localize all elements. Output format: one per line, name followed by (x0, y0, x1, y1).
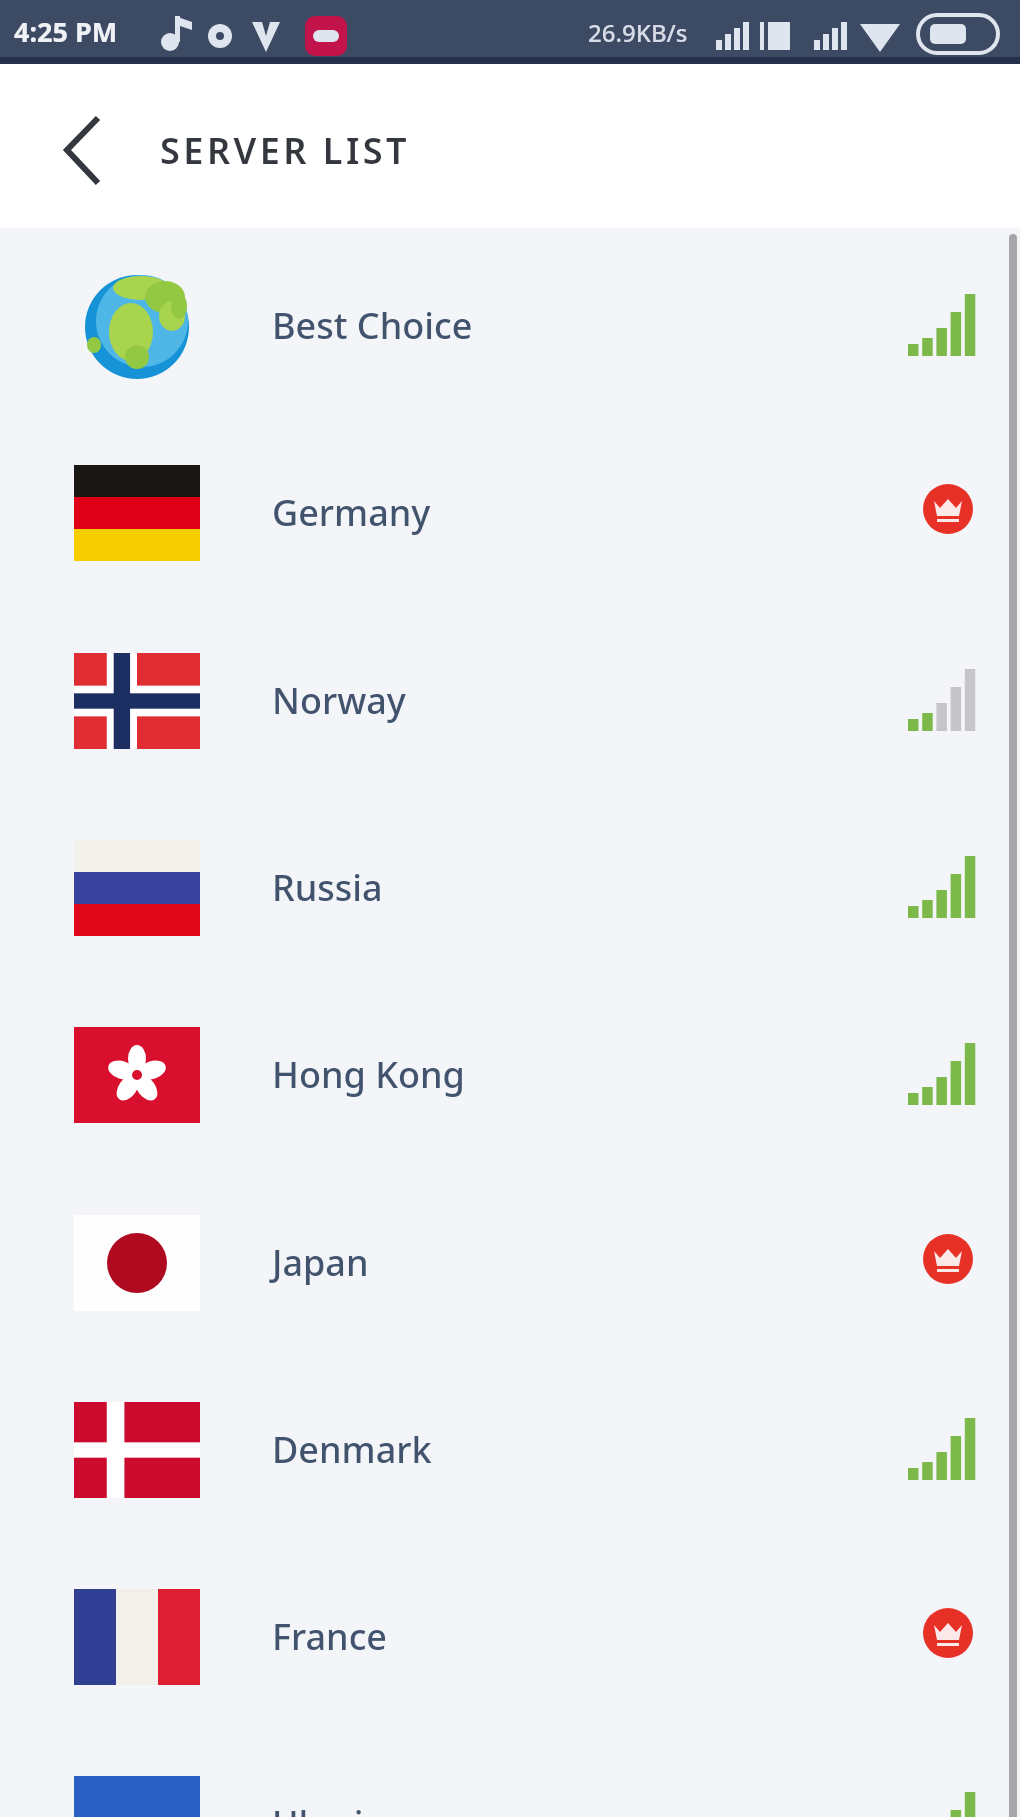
staticText: Russia (272, 863, 907, 912)
staticText: Best Choice (272, 301, 907, 350)
button[interactable] (44, 100, 124, 200)
staticText: SERVER LIST (160, 126, 411, 175)
staticText: Denmark (272, 1425, 907, 1474)
button[interactable]: France (0, 1543, 1020, 1730)
button[interactable]: Germany (0, 419, 1020, 606)
staticText: Norway (272, 676, 907, 725)
staticText: 4:25 PM (14, 13, 118, 50)
button[interactable]: Japan (0, 1169, 1020, 1356)
button[interactable]: Norway (0, 607, 1020, 794)
staticText: Japan (272, 1238, 907, 1287)
button[interactable]: Hong Kong (0, 981, 1020, 1168)
button[interactable]: Ukraine (0, 1730, 1020, 1817)
staticText: Ukraine (272, 1799, 907, 1817)
staticText: Hong Kong (272, 1050, 907, 1099)
button[interactable]: Denmark (0, 1356, 1020, 1543)
button[interactable]: Russia (0, 794, 1020, 981)
staticText: 26.9KB/s (588, 16, 688, 49)
staticText: France (272, 1612, 907, 1661)
button[interactable]: Best Choice (0, 232, 1020, 419)
staticText: Germany (272, 488, 907, 537)
